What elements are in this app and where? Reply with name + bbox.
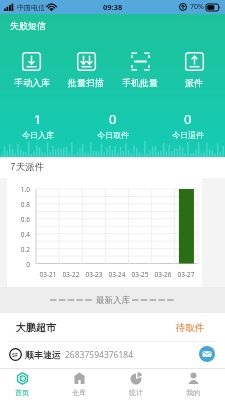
- staticText: 03-21: [36, 270, 60, 279]
- staticText: 0.8: [0, 200, 30, 209]
- staticText: 统计: [129, 388, 143, 397]
- staticText: 03-25: [128, 270, 152, 279]
- staticText: 待取件: [176, 322, 205, 334]
- staticText: 最新入库: [96, 295, 130, 306]
- staticText: 03-27: [174, 270, 198, 279]
- staticText: 今日入库: [22, 130, 54, 140]
- staticText: 手机批量: [122, 77, 158, 88]
- staticText: 0.4: [0, 230, 30, 239]
- staticText: 中国电信: [17, 3, 45, 12]
- staticText: 仓库: [72, 388, 86, 397]
- staticText: 今日取件: [97, 130, 129, 140]
- staticText: 0: [184, 110, 192, 128]
- staticText: 03-22: [59, 270, 83, 279]
- staticText: 03-26: [151, 270, 175, 279]
- staticText: 03-23: [82, 270, 106, 279]
- staticText: 今日退件: [172, 130, 204, 140]
- staticText: 1: [34, 110, 42, 128]
- staticText: 70%: [190, 2, 204, 12]
- staticText: 失败短信: [10, 20, 46, 31]
- staticText: 0.6: [0, 215, 30, 224]
- staticText: 03-24: [105, 270, 129, 279]
- staticText: 批量扫描: [68, 77, 104, 88]
- staticText: 09:38: [103, 2, 123, 12]
- staticText: 顺丰速运: [25, 349, 61, 360]
- staticText: 手动入库: [14, 77, 50, 88]
- staticText: 7天派件: [10, 161, 45, 173]
- staticText: 0.2: [0, 245, 30, 254]
- staticText: 0: [109, 110, 117, 128]
- staticText: 0: [0, 260, 30, 269]
- staticText: 大鹏超市: [16, 321, 56, 334]
- staticText: SF: [12, 351, 19, 358]
- staticText: 1.0: [0, 185, 30, 194]
- staticText: 首页: [15, 388, 29, 397]
- staticText: 派件: [185, 77, 203, 88]
- staticText: 26837594376184: [65, 349, 134, 361]
- staticText: 我的: [186, 388, 200, 397]
